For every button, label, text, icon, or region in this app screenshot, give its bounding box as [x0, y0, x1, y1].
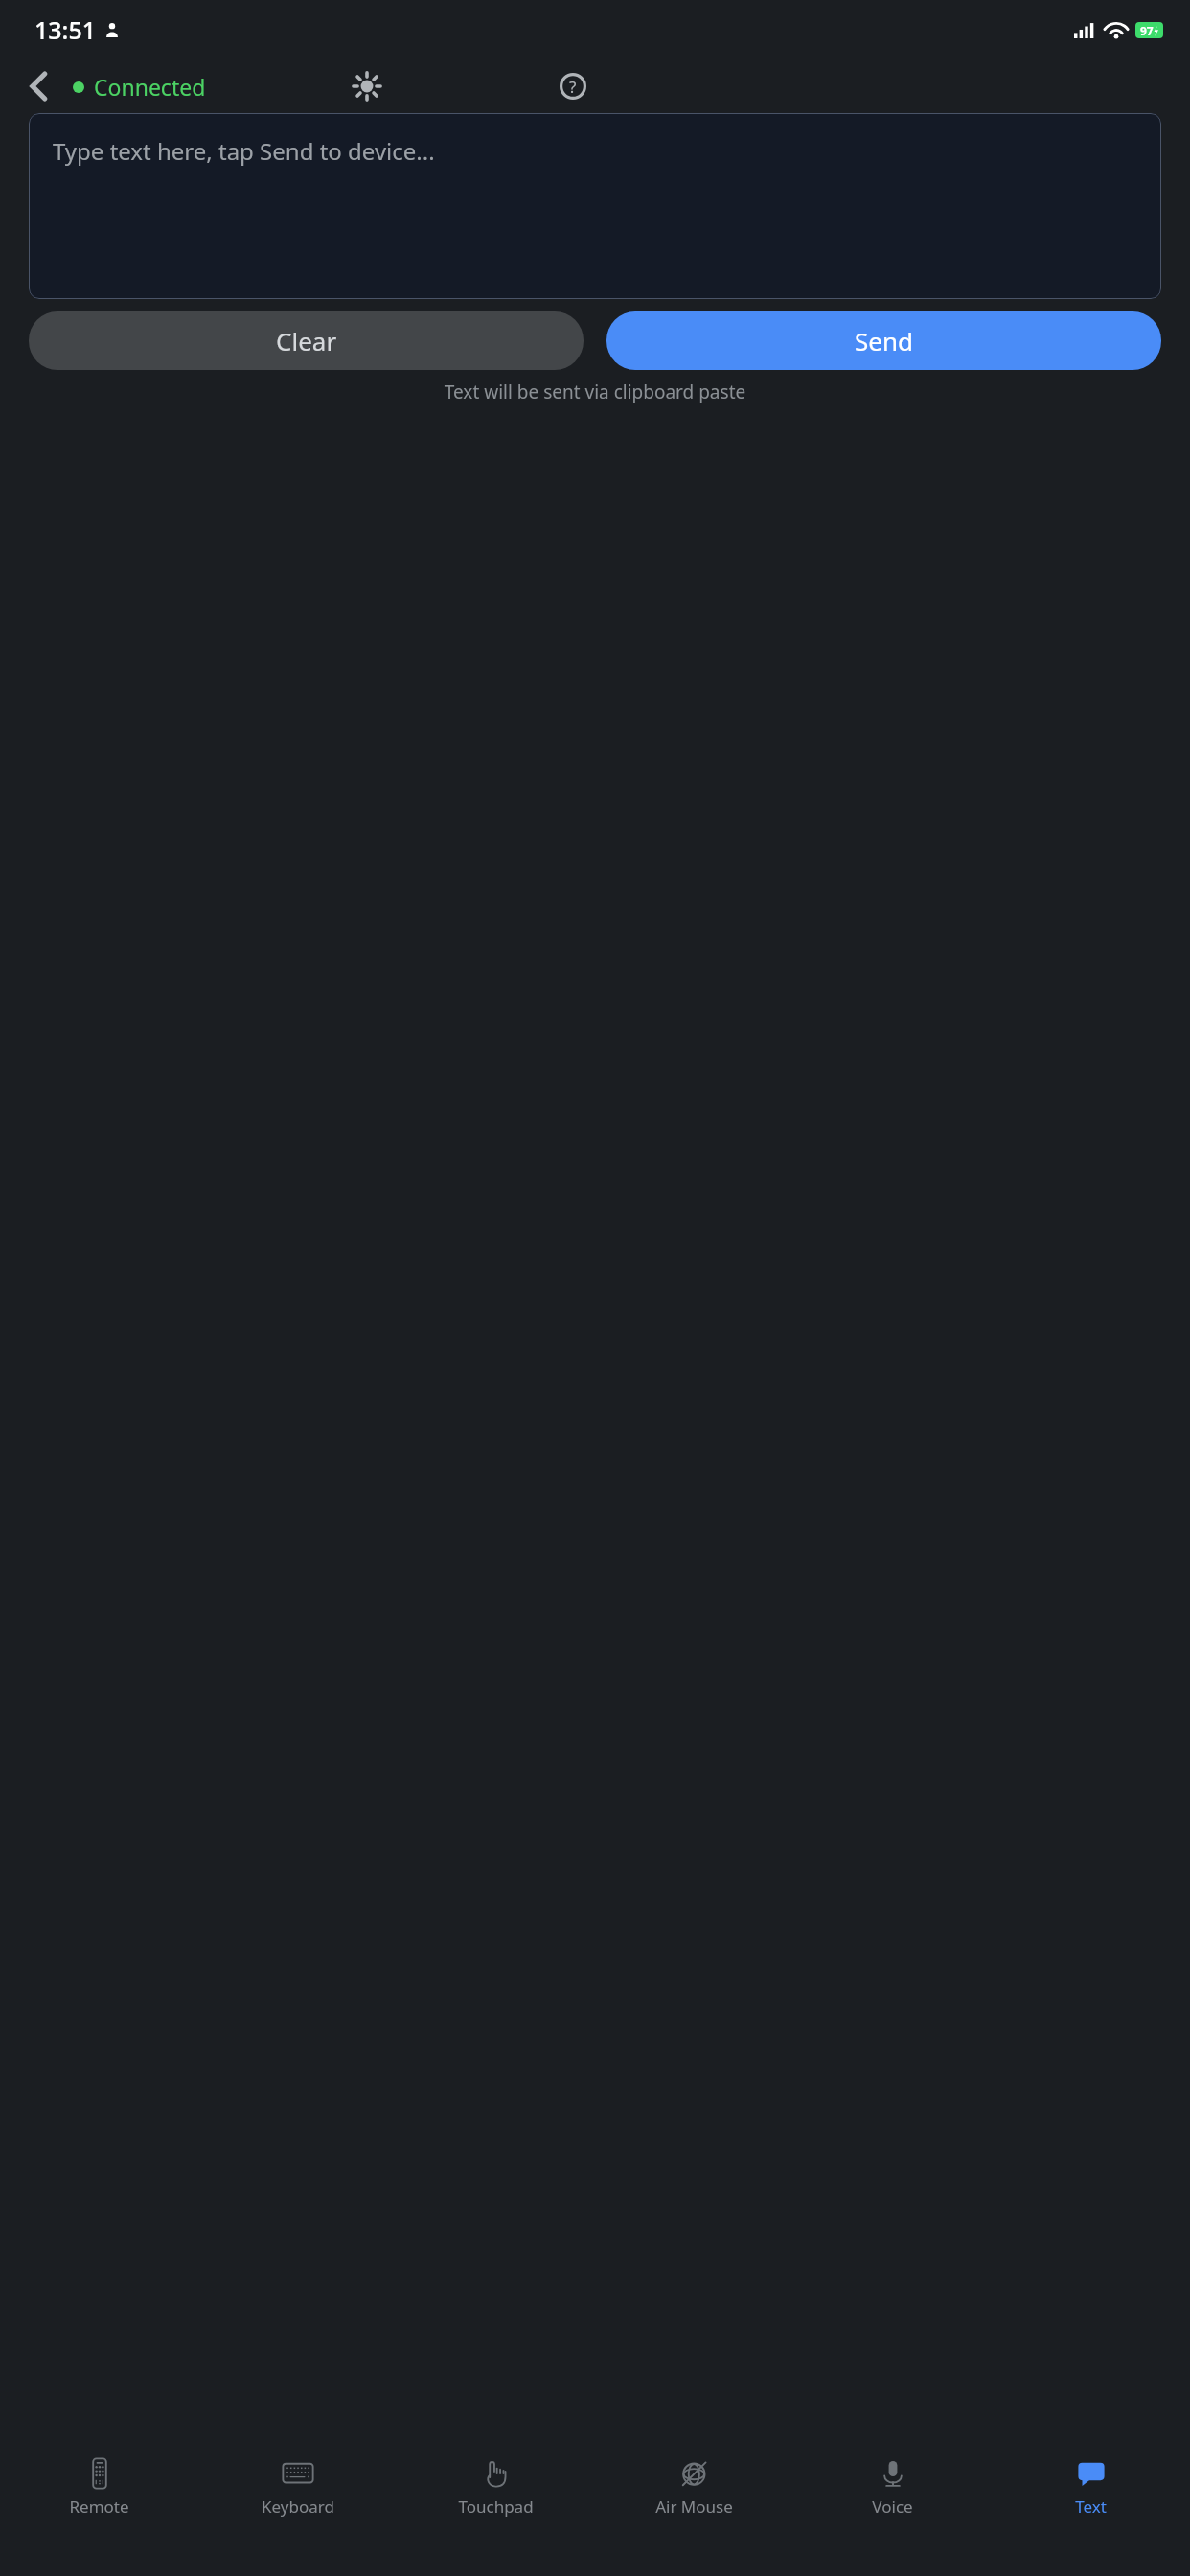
staticText: Text will be sent via clipboard paste — [0, 379, 1190, 404]
button[interactable]: Voice — [793, 2449, 992, 2518]
button[interactable]: Touchpad — [397, 2449, 595, 2518]
staticText: ? — [569, 76, 577, 98]
staticText: Touchpad — [458, 2495, 534, 2518]
button[interactable]: Type text here, tap Send to device... — [29, 113, 1161, 299]
button[interactable]: Send — [606, 311, 1161, 370]
button[interactable]: Text — [992, 2449, 1190, 2518]
button[interactable]: Help — [546, 59, 600, 113]
staticText: Keyboard — [262, 2495, 334, 2518]
staticText: Connected — [94, 72, 206, 102]
staticText: Type text here, tap Send to device... — [53, 135, 435, 167]
staticText: 97 — [1140, 23, 1154, 38]
staticText: Remote — [69, 2495, 129, 2518]
staticText: Clear — [276, 324, 337, 357]
button[interactable]: Back — [13, 61, 63, 111]
staticText: Air Mouse — [655, 2495, 733, 2518]
button[interactable]: Clear — [29, 311, 584, 370]
staticText: Send — [855, 324, 913, 357]
button[interactable]: Connected — [73, 72, 206, 102]
button[interactable]: Brightness — [340, 59, 394, 113]
staticText: 13:51 — [34, 13, 97, 46]
staticText: Text — [1075, 2495, 1107, 2518]
button[interactable]: Keyboard — [198, 2449, 397, 2518]
button[interactable]: Air Mouse — [595, 2449, 793, 2518]
staticText: Voice — [872, 2495, 913, 2518]
button[interactable]: Remote — [0, 2449, 198, 2518]
